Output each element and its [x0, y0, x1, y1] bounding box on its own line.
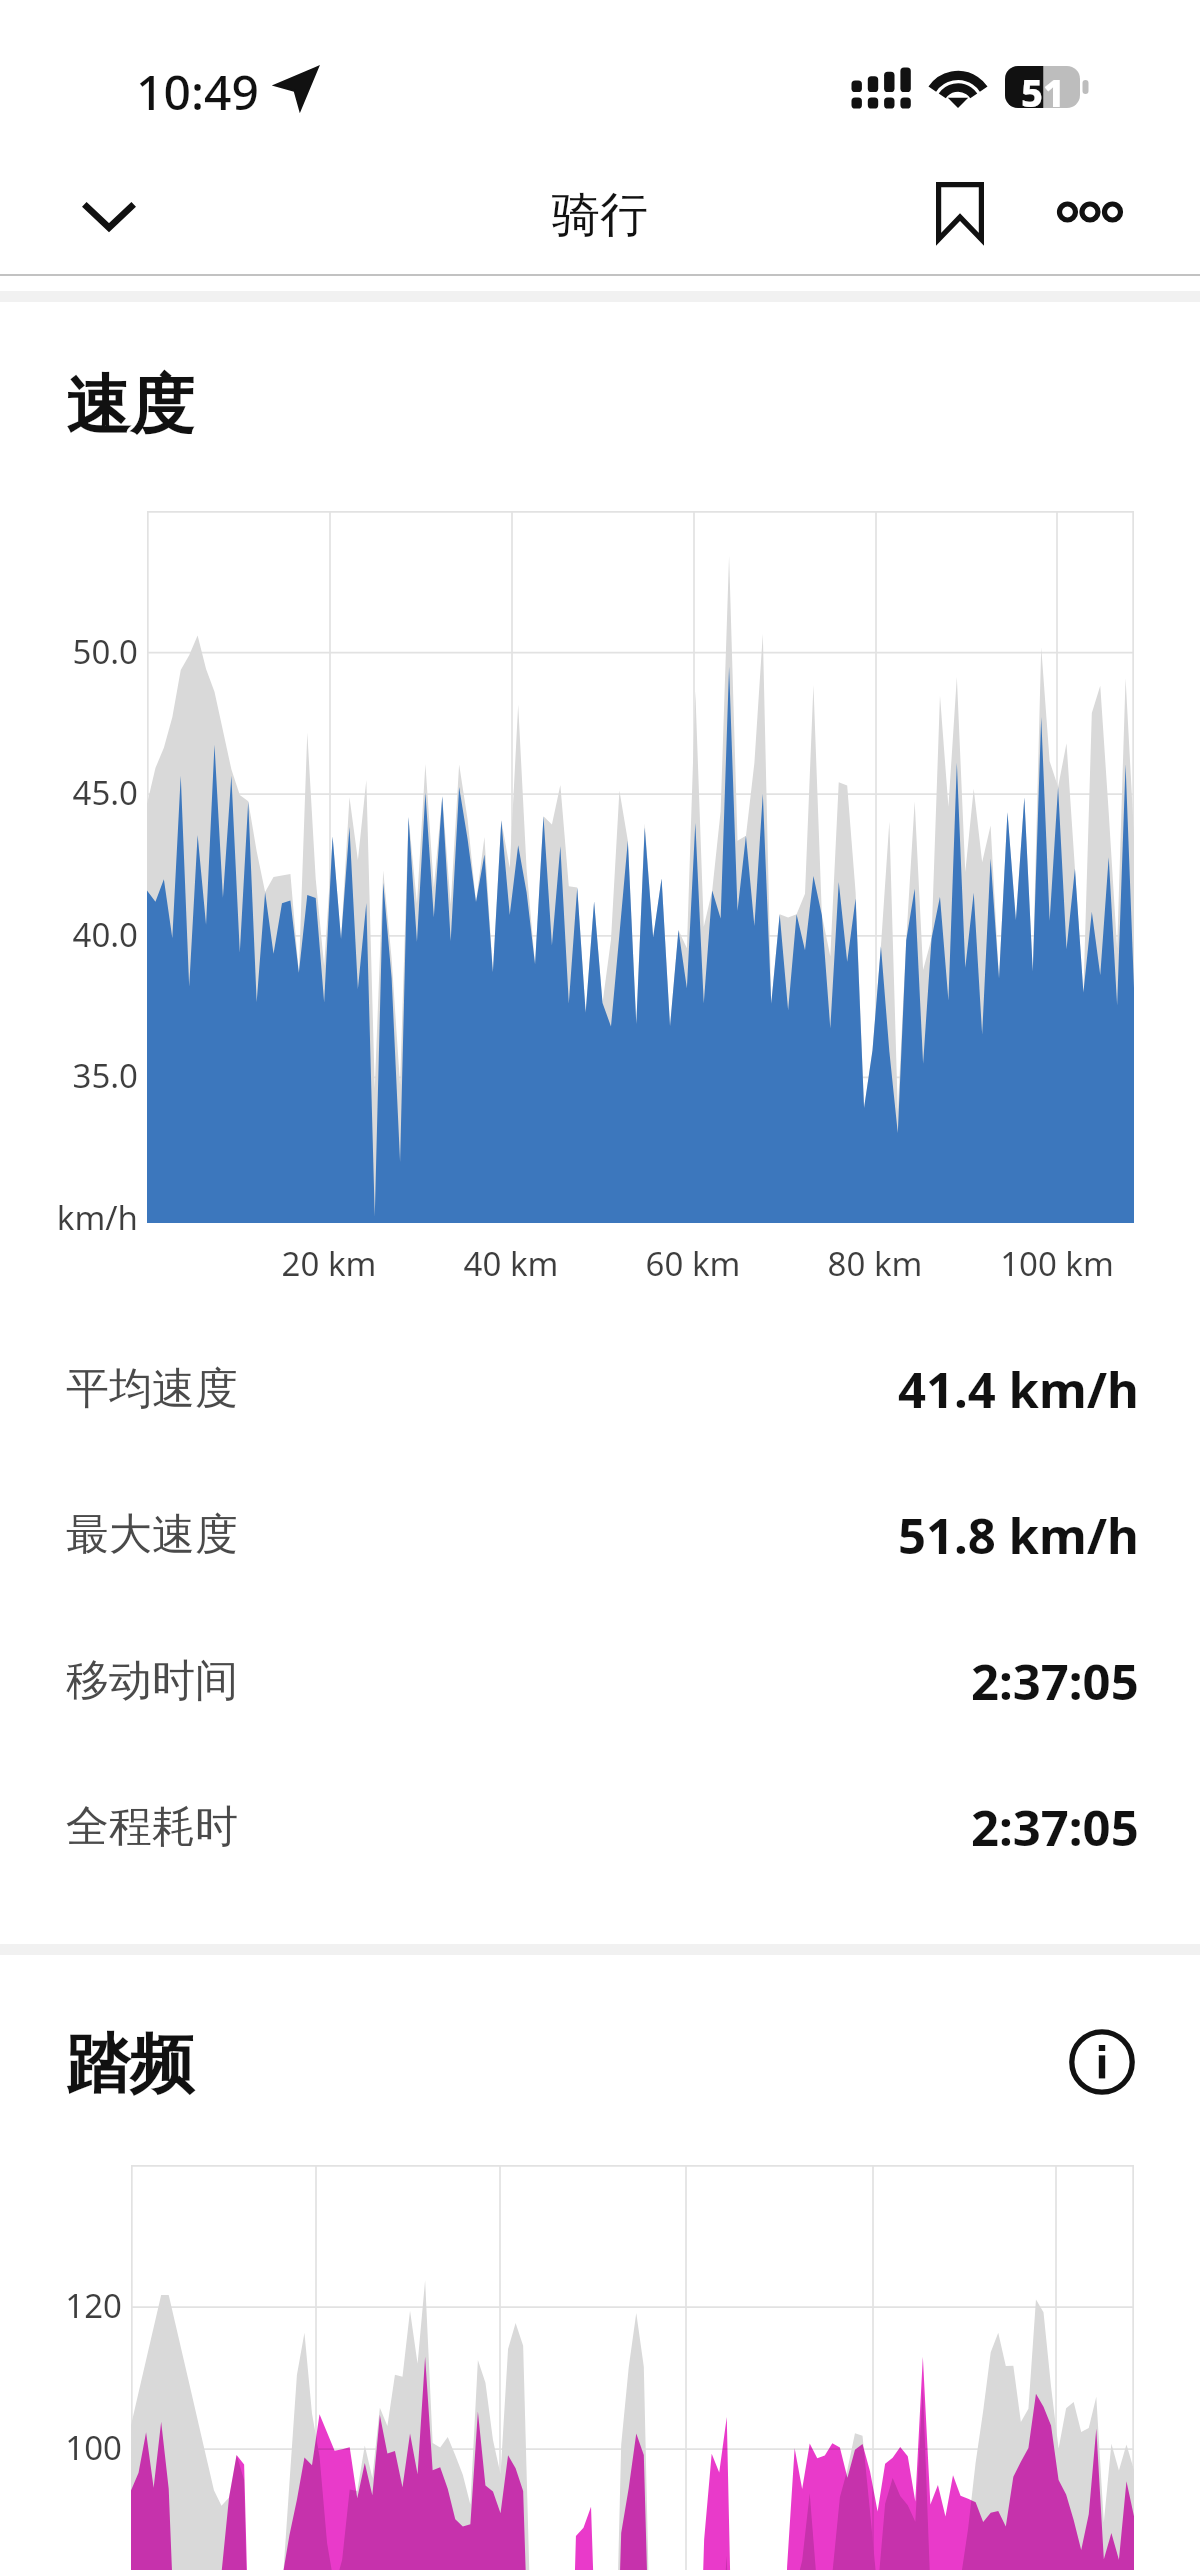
staticText: 50.0	[0, 629, 138, 674]
staticText: 10:49	[136, 59, 259, 124]
button[interactable]: 最大速度	[0, 1462, 1200, 1608]
staticText: 最大速度	[66, 1508, 238, 1562]
button[interactable]: Bookmark	[912, 165, 1008, 259]
button[interactable]: Info	[1054, 2014, 1150, 2110]
staticText: 80 km	[775, 1241, 975, 1286]
button[interactable]: 平均速度	[0, 1316, 1200, 1462]
staticText: 移动时间	[66, 1654, 238, 1708]
staticText: km/h	[0, 1195, 138, 1240]
staticText: 41.4 km/h	[898, 1356, 1139, 1423]
staticText: 全程耗时	[66, 1800, 238, 1854]
staticText: 51	[1021, 66, 1065, 108]
button[interactable]: Collapse	[60, 170, 158, 262]
button[interactable]: More options	[1043, 165, 1139, 259]
staticText: 40 km	[411, 1241, 611, 1286]
staticText: 60 km	[593, 1241, 793, 1286]
staticText: 100	[0, 2425, 122, 2470]
staticText: 51.8 km/h	[898, 1502, 1139, 1569]
staticText: 平均速度	[66, 1362, 238, 1416]
staticText: 2:37:05	[971, 1648, 1139, 1715]
staticText: 40.0	[0, 912, 138, 957]
button[interactable]: 移动时间	[0, 1608, 1200, 1754]
staticText: 35.0	[0, 1053, 138, 1098]
button[interactable]: 全程耗时	[0, 1754, 1200, 1900]
staticText: 踏频	[66, 2024, 194, 2105]
staticText: 120	[0, 2283, 122, 2328]
staticText: 2:37:05	[971, 1794, 1139, 1861]
staticText: 100 km	[957, 1241, 1157, 1286]
staticText: 速度	[66, 365, 194, 446]
staticText: 20 km	[229, 1241, 429, 1286]
staticText: 45.0	[0, 770, 138, 815]
staticText: 骑行	[552, 185, 648, 245]
